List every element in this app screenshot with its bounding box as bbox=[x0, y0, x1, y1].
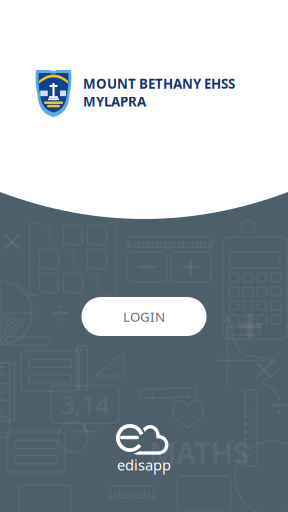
staticText: LOGIN bbox=[123, 308, 165, 325]
staticText: 1 bbox=[66, 244, 79, 274]
staticText: 3,14 bbox=[60, 388, 109, 421]
button[interactable]: LOGIN bbox=[81, 297, 206, 336]
staticText: 1 bbox=[90, 268, 103, 298]
staticText: MOUNT BETHANY EHSS bbox=[83, 75, 235, 92]
staticText: MATHS bbox=[149, 432, 249, 471]
staticText: edisapp bbox=[117, 455, 171, 474]
staticText: MYLAPRA bbox=[83, 92, 146, 110]
